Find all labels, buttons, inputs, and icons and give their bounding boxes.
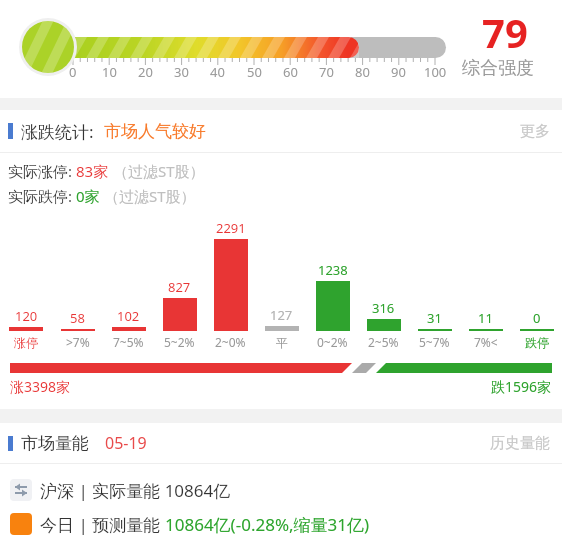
staticText: 31 bbox=[427, 309, 442, 327]
staticText: 市场人气较好 bbox=[104, 121, 206, 142]
staticText: 5~2% bbox=[164, 334, 195, 350]
button[interactable]: 今日 | 预测量能 bbox=[10, 510, 562, 538]
staticText: 316 bbox=[372, 299, 395, 317]
staticText: 综合强度 bbox=[462, 57, 534, 80]
staticText: 跌停 bbox=[525, 335, 549, 350]
staticText: 2291 bbox=[216, 219, 246, 237]
staticText: 7%< bbox=[474, 334, 498, 350]
staticText: 0 bbox=[533, 309, 541, 327]
staticText: 60 bbox=[283, 63, 298, 81]
staticText: 90 bbox=[391, 63, 406, 81]
staticText: （过滤ST股） bbox=[100, 186, 196, 206]
staticText: 20 bbox=[138, 63, 153, 81]
button[interactable]: 涨跌统计: bbox=[8, 110, 550, 152]
staticText: >7% bbox=[66, 334, 90, 350]
staticText: 跌1596家 bbox=[491, 377, 552, 396]
staticText: 10 bbox=[102, 63, 117, 81]
staticText: 127 bbox=[270, 306, 293, 324]
staticText: 涨跌统计: bbox=[21, 120, 94, 143]
staticText: 今日 | 预测量能 bbox=[40, 513, 165, 536]
staticText: 30 bbox=[174, 63, 189, 81]
staticText: 50 bbox=[247, 63, 262, 81]
staticText: 10864亿(-0.28%,缩量31亿) bbox=[165, 513, 370, 536]
staticText: 102 bbox=[117, 307, 140, 325]
staticText: 平 bbox=[276, 335, 288, 350]
staticText: 沪深 | 实际量能 10864亿 bbox=[40, 479, 231, 502]
staticText: 更多 bbox=[520, 122, 550, 141]
staticText: 827 bbox=[168, 278, 191, 296]
staticText: 实际涨停: bbox=[8, 161, 76, 181]
staticText: 05-19 bbox=[105, 432, 147, 454]
staticText: 2~5% bbox=[368, 334, 399, 350]
staticText: 80 bbox=[355, 63, 370, 81]
staticText: 7~5% bbox=[113, 334, 144, 350]
staticText: 2~0% bbox=[215, 334, 246, 350]
staticText: 历史量能 bbox=[490, 434, 550, 453]
staticText: 79 bbox=[482, 5, 528, 59]
button[interactable]: 沪深 | 实际量能 10864亿 bbox=[10, 476, 562, 504]
staticText: 实际跌停: bbox=[8, 186, 76, 206]
staticText: 1238 bbox=[318, 261, 348, 279]
staticText: （过滤ST股） bbox=[109, 161, 205, 181]
staticText: 11 bbox=[478, 309, 493, 327]
staticText: 58 bbox=[70, 309, 85, 327]
staticText: 0 bbox=[69, 63, 77, 81]
staticText: 120 bbox=[15, 307, 38, 325]
staticText: 0~2% bbox=[317, 334, 348, 350]
button[interactable]: 市场量能 bbox=[8, 423, 550, 463]
staticText: 100 bbox=[424, 63, 447, 81]
staticText: 市场量能 bbox=[21, 433, 89, 454]
staticText: 0家 bbox=[76, 186, 100, 206]
staticText: 70 bbox=[319, 63, 334, 81]
staticText: 40 bbox=[210, 63, 225, 81]
staticText: 涨停 bbox=[14, 335, 38, 350]
staticText: 5~7% bbox=[419, 334, 450, 350]
staticText: 83家 bbox=[76, 161, 109, 181]
staticText: 涨3398家 bbox=[10, 377, 71, 396]
